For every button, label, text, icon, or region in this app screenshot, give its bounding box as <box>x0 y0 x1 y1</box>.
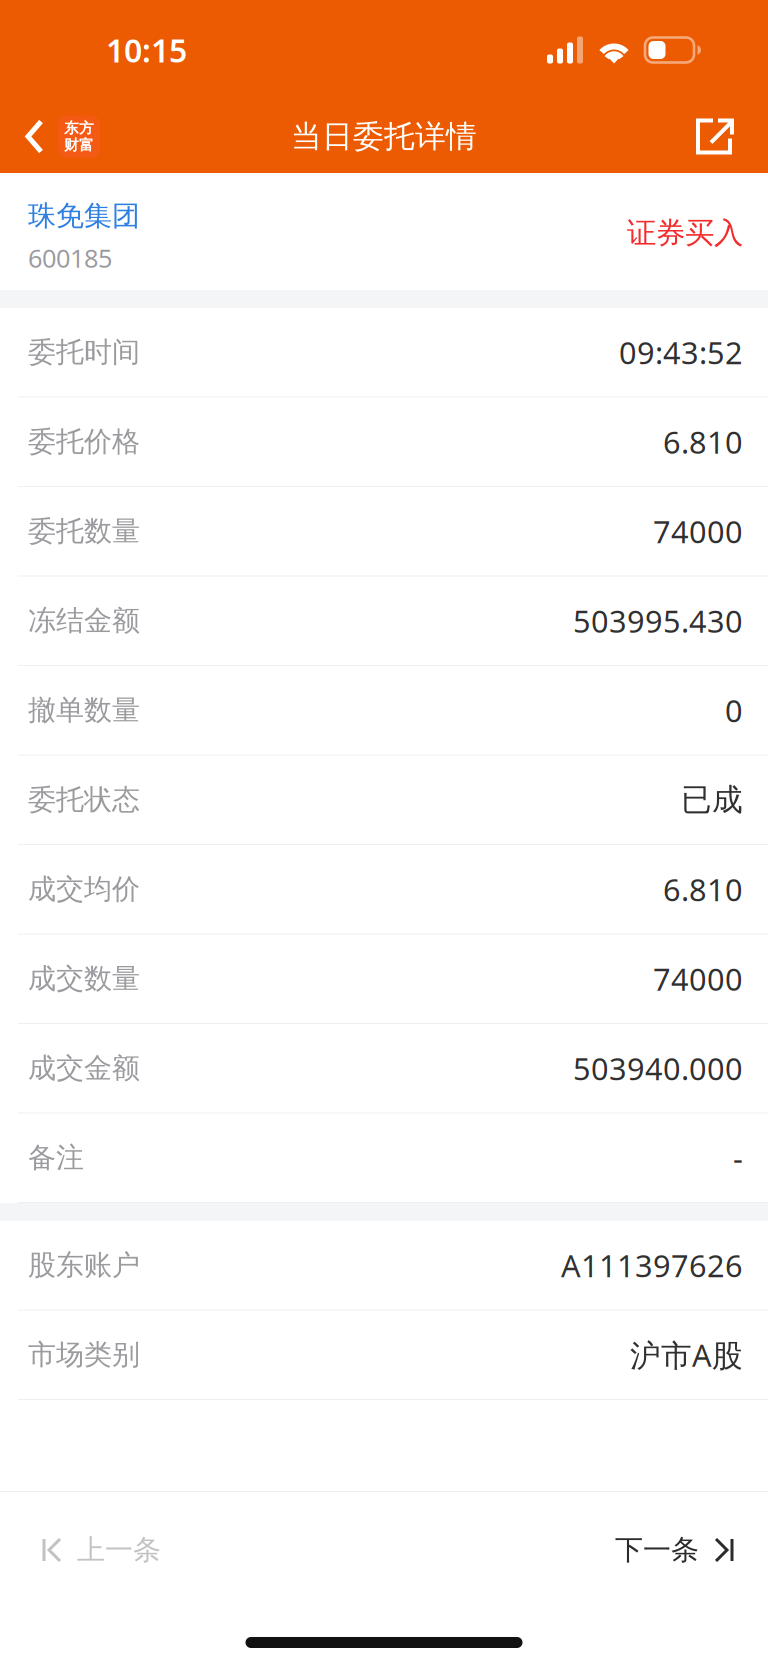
staticText: 东方 <box>64 119 94 137</box>
button[interactable]: 下一条 <box>585 1492 768 1608</box>
staticText: 6.810 <box>663 869 743 910</box>
staticText: 沪市A股 <box>630 1334 743 1375</box>
staticText: 09:43:52 <box>619 332 743 373</box>
staticText: 财富 <box>64 136 94 154</box>
staticText: 10:15 <box>106 29 187 71</box>
staticText: 委托时间 <box>28 335 140 369</box>
staticText: 市场类别 <box>28 1338 140 1372</box>
staticText: 成交数量 <box>28 962 140 996</box>
staticText: 已成 <box>681 781 743 819</box>
staticText: 成交金额 <box>28 1051 140 1085</box>
staticText: 503940.000 <box>573 1048 743 1089</box>
button[interactable]: 返回 <box>0 100 114 173</box>
staticText: 珠免集团 <box>28 199 140 233</box>
staticText: 冻结金额 <box>28 604 140 638</box>
staticText: 600185 <box>28 241 112 275</box>
staticText: 503995.430 <box>573 600 743 641</box>
staticText: 下一条 <box>615 1533 699 1567</box>
staticText: 委托数量 <box>28 514 140 548</box>
staticText: 委托状态 <box>28 783 140 817</box>
staticText: 撤单数量 <box>28 693 140 727</box>
button[interactable]: 上一条 <box>0 1492 191 1608</box>
staticText: 上一条 <box>77 1533 161 1567</box>
staticText: 成交均价 <box>28 872 140 906</box>
staticText: 证券买入 <box>627 215 743 251</box>
button[interactable]: 分享 <box>675 100 768 173</box>
staticText: 当日委托详情 <box>291 118 477 155</box>
staticText: 74000 <box>653 958 743 999</box>
staticText: 74000 <box>653 511 743 552</box>
staticText: 委托价格 <box>28 425 140 459</box>
staticText: 0 <box>725 690 743 731</box>
staticText: A111397626 <box>561 1245 743 1286</box>
staticText: 备注 <box>28 1141 84 1175</box>
staticText: 股东账户 <box>28 1248 140 1282</box>
staticText: - <box>733 1137 743 1178</box>
staticText: 6.810 <box>663 421 743 462</box>
